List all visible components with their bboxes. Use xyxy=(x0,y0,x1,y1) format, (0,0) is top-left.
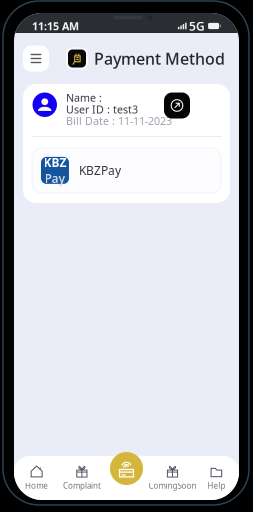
staticText: Bill Date : 11-11-2023 xyxy=(66,114,172,128)
staticText: Help xyxy=(207,480,225,491)
button[interactable]: Open details xyxy=(164,92,190,118)
button[interactable]: Home xyxy=(14,465,59,491)
button[interactable]: Complaint xyxy=(59,465,105,491)
staticText: Name : xyxy=(66,90,102,105)
staticText: KBZPay xyxy=(79,162,121,178)
staticText: 11:15 AM xyxy=(32,19,79,33)
button[interactable]: ComingSoon xyxy=(148,465,194,491)
staticText: 5G xyxy=(189,18,205,34)
staticText: KBZ xyxy=(43,154,66,170)
staticText: User ID : test3 xyxy=(66,102,138,116)
staticText: Payment Method xyxy=(94,48,225,69)
staticText: Pay xyxy=(44,170,65,186)
staticText: Home xyxy=(25,480,48,491)
button[interactable]: Menu xyxy=(23,45,49,71)
staticText: ComingSoon xyxy=(148,480,196,491)
staticText: Complaint xyxy=(63,480,101,491)
button[interactable]: KBZ xyxy=(32,148,221,193)
button[interactable]: Help xyxy=(194,465,239,491)
